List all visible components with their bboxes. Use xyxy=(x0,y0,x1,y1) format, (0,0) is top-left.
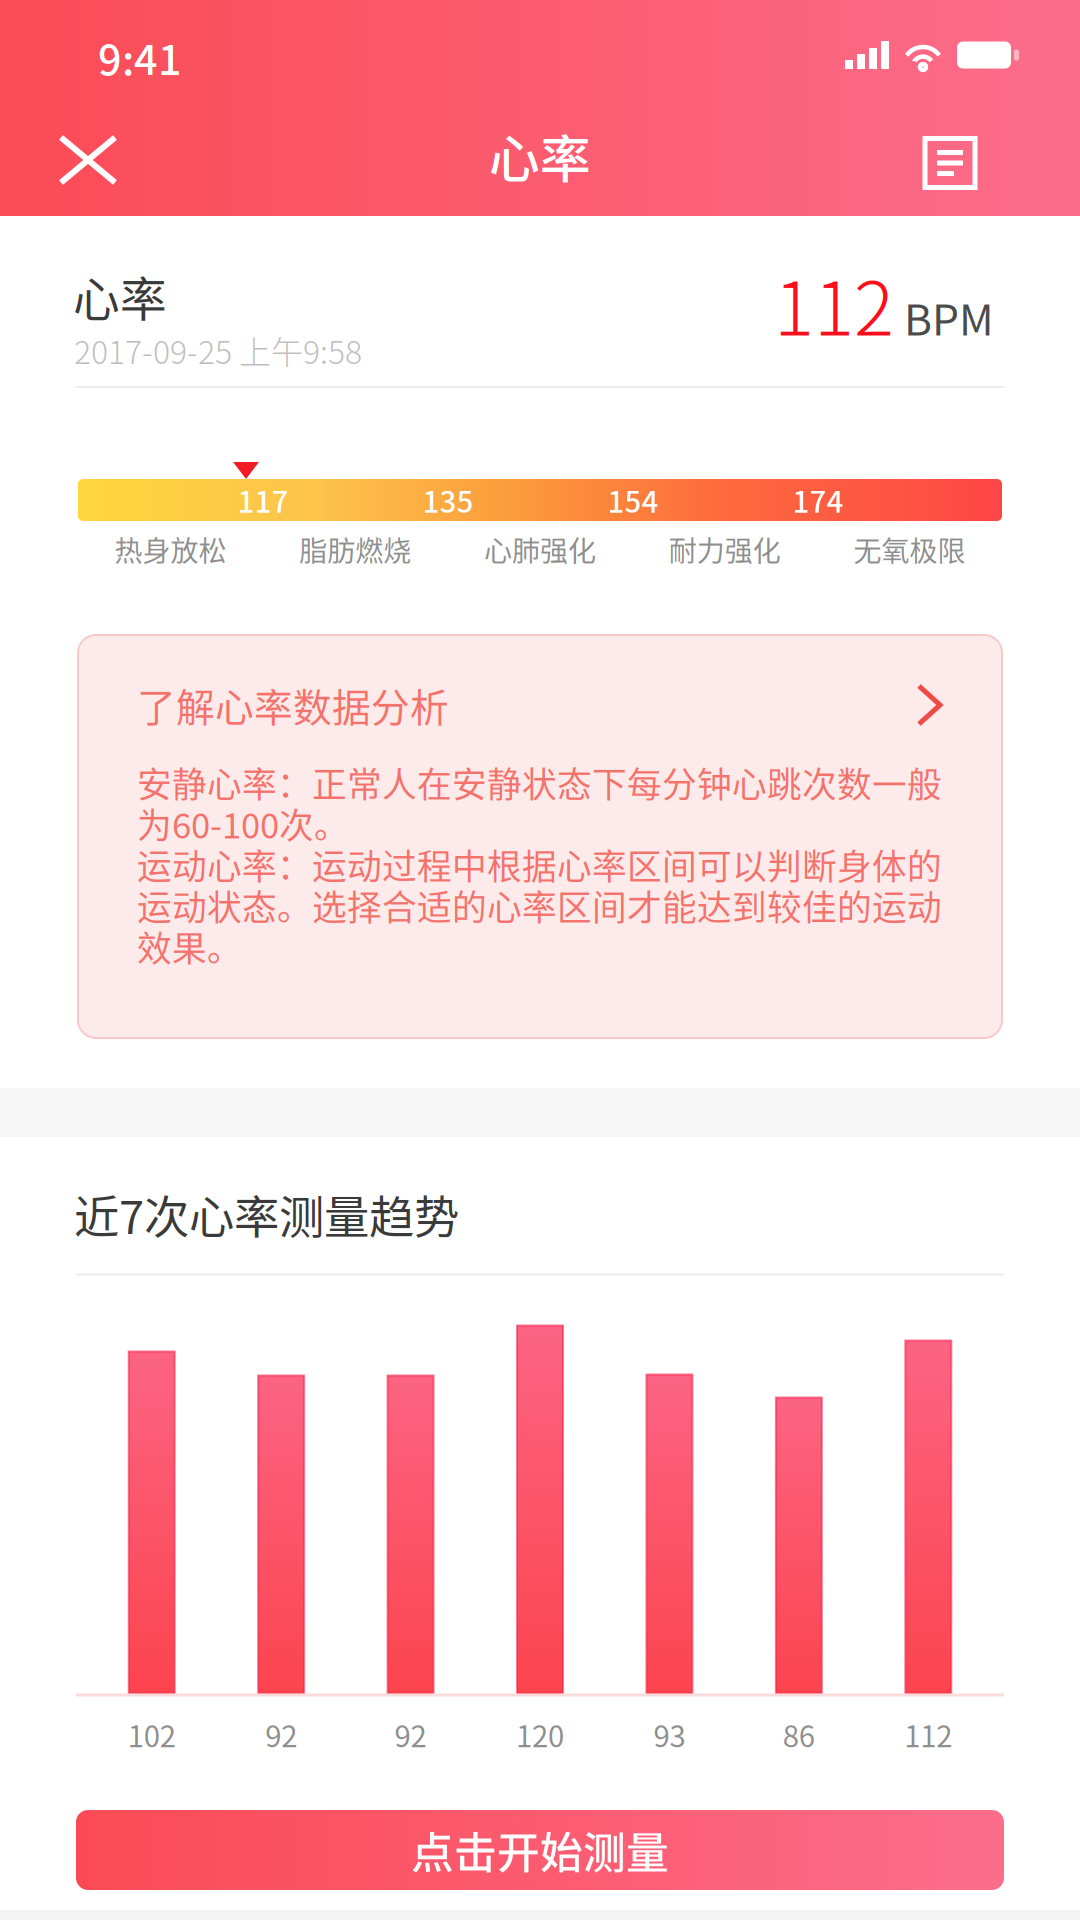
staticText: 热身放松 xyxy=(114,529,226,569)
staticText: 无氧极限 xyxy=(854,529,966,569)
staticText: 2017-09-25 上午9:58 xyxy=(74,327,362,373)
staticText: 耐力强化 xyxy=(669,529,781,569)
button[interactable]: 关闭 xyxy=(0,96,176,224)
staticText: 运动心率：运动过程中根据心率区间可以判断身体的 xyxy=(137,839,942,890)
staticText: 心率 xyxy=(489,119,591,193)
staticText: 102 xyxy=(128,1713,176,1756)
staticText: 心率 xyxy=(73,262,167,330)
button[interactable]: 心率 xyxy=(420,92,660,220)
button[interactable]: 了解心率数据分析 xyxy=(0,635,1080,1038)
button[interactable]: 历史记录 xyxy=(862,99,1038,227)
staticText: 脂肪燃烧 xyxy=(299,529,411,569)
staticText: 92 xyxy=(395,1713,427,1756)
staticText: 135 xyxy=(422,479,473,521)
staticText: 安静心率：正常人在安静状态下每分钟心跳次数一般 xyxy=(137,757,942,808)
staticText: 117 xyxy=(237,479,288,521)
staticText: 112 xyxy=(774,249,894,357)
staticText: 心肺强化 xyxy=(484,529,596,569)
staticText: 点击开始测量 xyxy=(411,1819,669,1881)
staticText: 9:41 xyxy=(98,27,182,87)
staticText: 120 xyxy=(516,1713,564,1756)
staticText: 154 xyxy=(607,479,658,521)
staticText: 运动状态。选择合适的心率区间才能达到较佳的运动 xyxy=(137,880,942,931)
staticText: 86 xyxy=(783,1713,815,1756)
staticText: 了解心率数据分析 xyxy=(137,677,449,733)
staticText: 112 xyxy=(904,1713,952,1756)
staticText: 近7次心率测量趋势 xyxy=(74,1181,459,1247)
button[interactable]: 点击开始测量 xyxy=(0,1810,1080,1890)
staticText: 93 xyxy=(653,1713,685,1756)
staticText: 174 xyxy=(792,479,843,521)
staticText: BPM xyxy=(904,286,994,348)
staticText: 为60-100次。 xyxy=(137,798,349,849)
staticText: 92 xyxy=(265,1713,297,1756)
staticText: 效果。 xyxy=(137,921,242,972)
